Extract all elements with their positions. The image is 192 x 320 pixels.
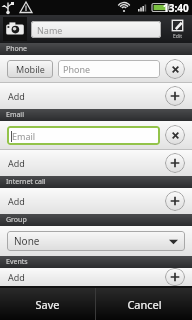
button[interactable]: Add [0,188,192,214]
button[interactable]: Email [7,126,160,145]
staticText: Group [6,215,27,225]
button[interactable]: Phone [58,60,160,78]
staticText: Add [8,195,25,207]
staticText: Add [8,271,25,283]
button[interactable]: Add phone [165,86,185,106]
button[interactable]: Add [0,150,192,176]
staticText: 13:40 [163,1,189,15]
button[interactable]: Add photo [3,17,27,41]
staticText: Add [8,157,25,169]
staticText: Phone [6,44,28,54]
staticText: Mobile [16,63,45,75]
staticText: Phone [63,63,91,75]
staticText: Internet call [6,177,46,187]
staticText: Save [35,297,60,312]
button[interactable]: Mobile [7,60,53,78]
button[interactable]: Add event [165,268,185,286]
button[interactable]: Add internet call [165,191,185,211]
button[interactable]: Add [0,83,192,109]
button[interactable]: Name [31,21,161,38]
staticText: Name [37,24,63,36]
button[interactable]: Save [0,288,95,320]
staticText: Edit [173,33,182,40]
button[interactable]: Remove [165,125,185,145]
button[interactable]: Add email [165,153,185,173]
button[interactable]: Remove [165,59,185,79]
staticText: Email [12,130,36,142]
button[interactable]: Add [0,268,192,286]
button[interactable]: Cancel [96,288,192,320]
staticText: Events [6,257,28,267]
staticText: None [14,234,40,248]
staticText: Add [8,90,25,102]
staticText: Email [6,110,24,120]
staticText: Cancel [127,297,162,312]
button[interactable]: None [7,231,185,251]
button[interactable]: Edit [165,15,189,43]
